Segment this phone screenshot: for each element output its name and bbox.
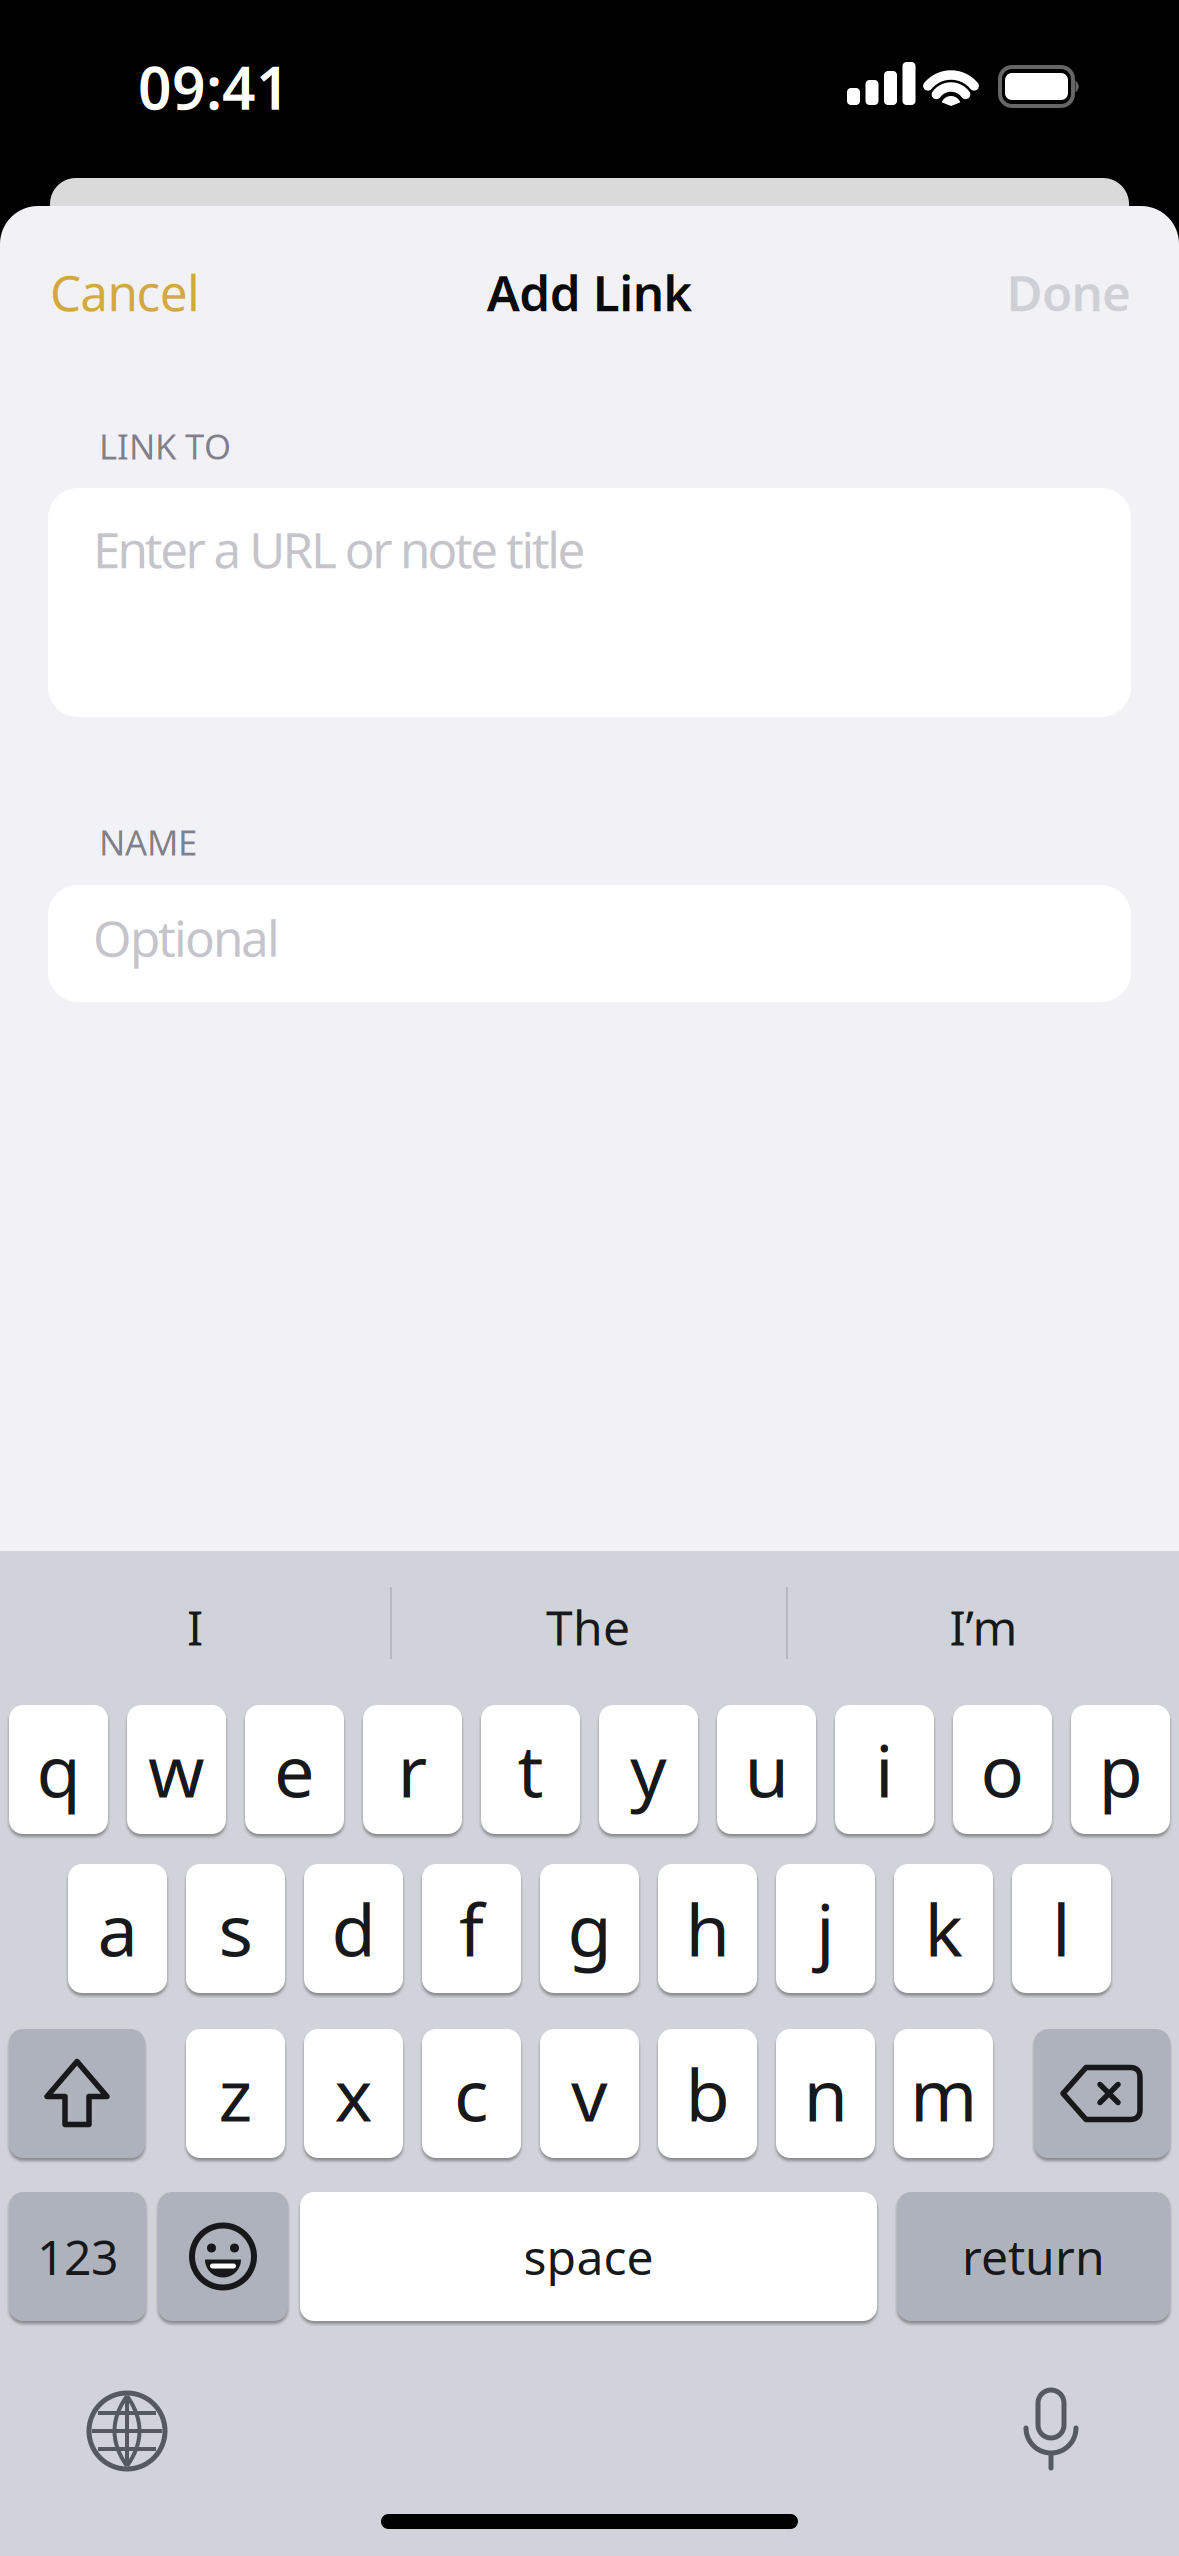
staticText: u (744, 1722, 788, 1817)
button[interactable]: p (1071, 1705, 1170, 1834)
staticText: I (187, 1595, 203, 1659)
button[interactable]: Cancel (50, 252, 290, 332)
staticText: p (1098, 1722, 1142, 1817)
staticText: q (36, 1722, 80, 1817)
button[interactable]: r (363, 1705, 462, 1834)
button[interactable]: Next keyboard (89, 2393, 165, 2469)
button[interactable]: a (68, 1864, 167, 1993)
staticText: x (334, 2046, 372, 2141)
button[interactable]: l (1012, 1864, 1111, 1993)
staticText: return (962, 2225, 1105, 2288)
staticText: g (567, 1881, 611, 1976)
button[interactable]: z (186, 2029, 285, 2158)
staticText: b (685, 2046, 729, 2141)
staticText: LINK TO (99, 423, 231, 469)
button[interactable]: n (776, 2029, 875, 2158)
staticText: r (397, 1722, 427, 1817)
staticText: Cancel (50, 259, 200, 325)
staticText: t (517, 1722, 543, 1817)
button[interactable]: u (717, 1705, 816, 1834)
button[interactable]: Name (48, 885, 1131, 1002)
staticText: z (218, 2046, 252, 2141)
staticText: I’m (949, 1595, 1017, 1659)
staticText: space (523, 2225, 653, 2288)
staticText: Optional (93, 905, 280, 970)
button[interactable]: I (0, 1551, 390, 1703)
button[interactable]: I’m (788, 1551, 1179, 1703)
button[interactable]: f (422, 1864, 521, 1993)
button[interactable]: i (835, 1705, 934, 1834)
staticText: Add Link (487, 259, 692, 325)
button[interactable]: b (658, 2029, 757, 2158)
staticText: 123 (37, 2225, 118, 2288)
staticText: m (910, 2046, 977, 2141)
button[interactable]: g (540, 1864, 639, 1993)
button[interactable]: q (9, 1705, 108, 1834)
button[interactable]: d (304, 1864, 403, 1993)
button[interactable]: k (894, 1864, 993, 1993)
button[interactable]: Link to (48, 488, 1131, 717)
staticText: 09:41 (138, 48, 290, 126)
button[interactable]: c (422, 2029, 521, 2158)
staticText: NAME (99, 819, 197, 865)
staticText: The (546, 1595, 630, 1659)
staticText: v (571, 2046, 608, 2141)
staticText: o (980, 1722, 1024, 1817)
staticText: h (685, 1881, 729, 1976)
button[interactable]: Delete (1034, 2029, 1170, 2158)
button[interactable]: h (658, 1864, 757, 1993)
staticText: Enter a URL or note title (93, 516, 586, 582)
button[interactable]: x (304, 2029, 403, 2158)
button[interactable]: return (897, 2192, 1170, 2321)
staticText: s (218, 1881, 252, 1976)
staticText: c (454, 2046, 489, 2141)
button[interactable]: The (392, 1551, 784, 1703)
staticText: j (816, 1881, 835, 1976)
staticText: Done (1006, 259, 1131, 325)
staticText: d (331, 1881, 375, 1976)
button[interactable]: Numbers (9, 2192, 146, 2321)
button[interactable]: s (186, 1864, 285, 1993)
staticText: i (875, 1722, 894, 1817)
button[interactable]: e (245, 1705, 344, 1834)
button[interactable]: v (540, 2029, 639, 2158)
button[interactable]: space (300, 2192, 877, 2321)
button[interactable]: Done (891, 252, 1131, 332)
button[interactable]: m (894, 2029, 993, 2158)
button[interactable]: w (127, 1705, 226, 1834)
button[interactable]: j (776, 1864, 875, 1993)
button[interactable]: y (599, 1705, 698, 1834)
staticText: a (97, 1881, 137, 1976)
button[interactable]: t (481, 1705, 580, 1834)
staticText: k (924, 1881, 962, 1976)
staticText: n (803, 2046, 847, 2141)
staticText: l (1052, 1881, 1071, 1976)
staticText: w (148, 1722, 205, 1817)
staticText: y (630, 1722, 667, 1817)
button[interactable]: o (953, 1705, 1052, 1834)
button[interactable]: Shift (9, 2029, 145, 2158)
staticText: e (274, 1722, 315, 1817)
button[interactable]: Emoji (158, 2192, 288, 2321)
button[interactable]: Dictation (1024, 2390, 1078, 2470)
staticText: f (459, 1881, 484, 1976)
